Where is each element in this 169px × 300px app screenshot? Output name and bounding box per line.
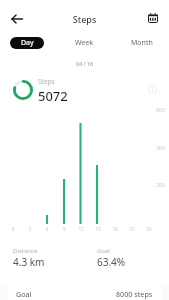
staticText: 21 [124, 226, 140, 232]
staticText: 0 [5, 226, 21, 232]
button[interactable]: Back [6, 8, 27, 29]
button[interactable]: Goal [16, 286, 153, 300]
staticText: 3 [22, 226, 38, 232]
staticText: 200 [152, 182, 169, 189]
staticText: Goal [16, 289, 32, 299]
staticText: 400 [152, 145, 169, 152]
staticText: 15 [90, 226, 106, 232]
button[interactable]: Info [144, 81, 160, 97]
staticText: 5072 [38, 87, 68, 105]
staticText: 6 [39, 226, 55, 232]
staticText: 4.3 km [13, 255, 45, 269]
staticText: Distance [13, 247, 38, 255]
staticText: 9 [56, 226, 72, 232]
button[interactable]: Week [64, 36, 104, 49]
staticText: 8000 steps [116, 289, 153, 299]
staticText: Month [131, 38, 153, 48]
button[interactable]: Calendar [143, 8, 163, 28]
staticText: Day [21, 38, 34, 48]
staticText: Week [75, 38, 94, 48]
staticText: 18 [107, 226, 123, 232]
staticText: Steps [0, 13, 169, 25]
staticText: Steps [38, 77, 55, 86]
staticText: 63.4% [97, 255, 126, 269]
staticText: Goal [97, 247, 110, 255]
button[interactable]: Month [121, 36, 162, 49]
staticText: 04 / 16 [0, 60, 169, 67]
staticText: 600 [152, 107, 169, 114]
staticText: 12 [73, 226, 89, 232]
button[interactable]: Day [10, 37, 44, 49]
staticText: 24 [141, 226, 157, 232]
